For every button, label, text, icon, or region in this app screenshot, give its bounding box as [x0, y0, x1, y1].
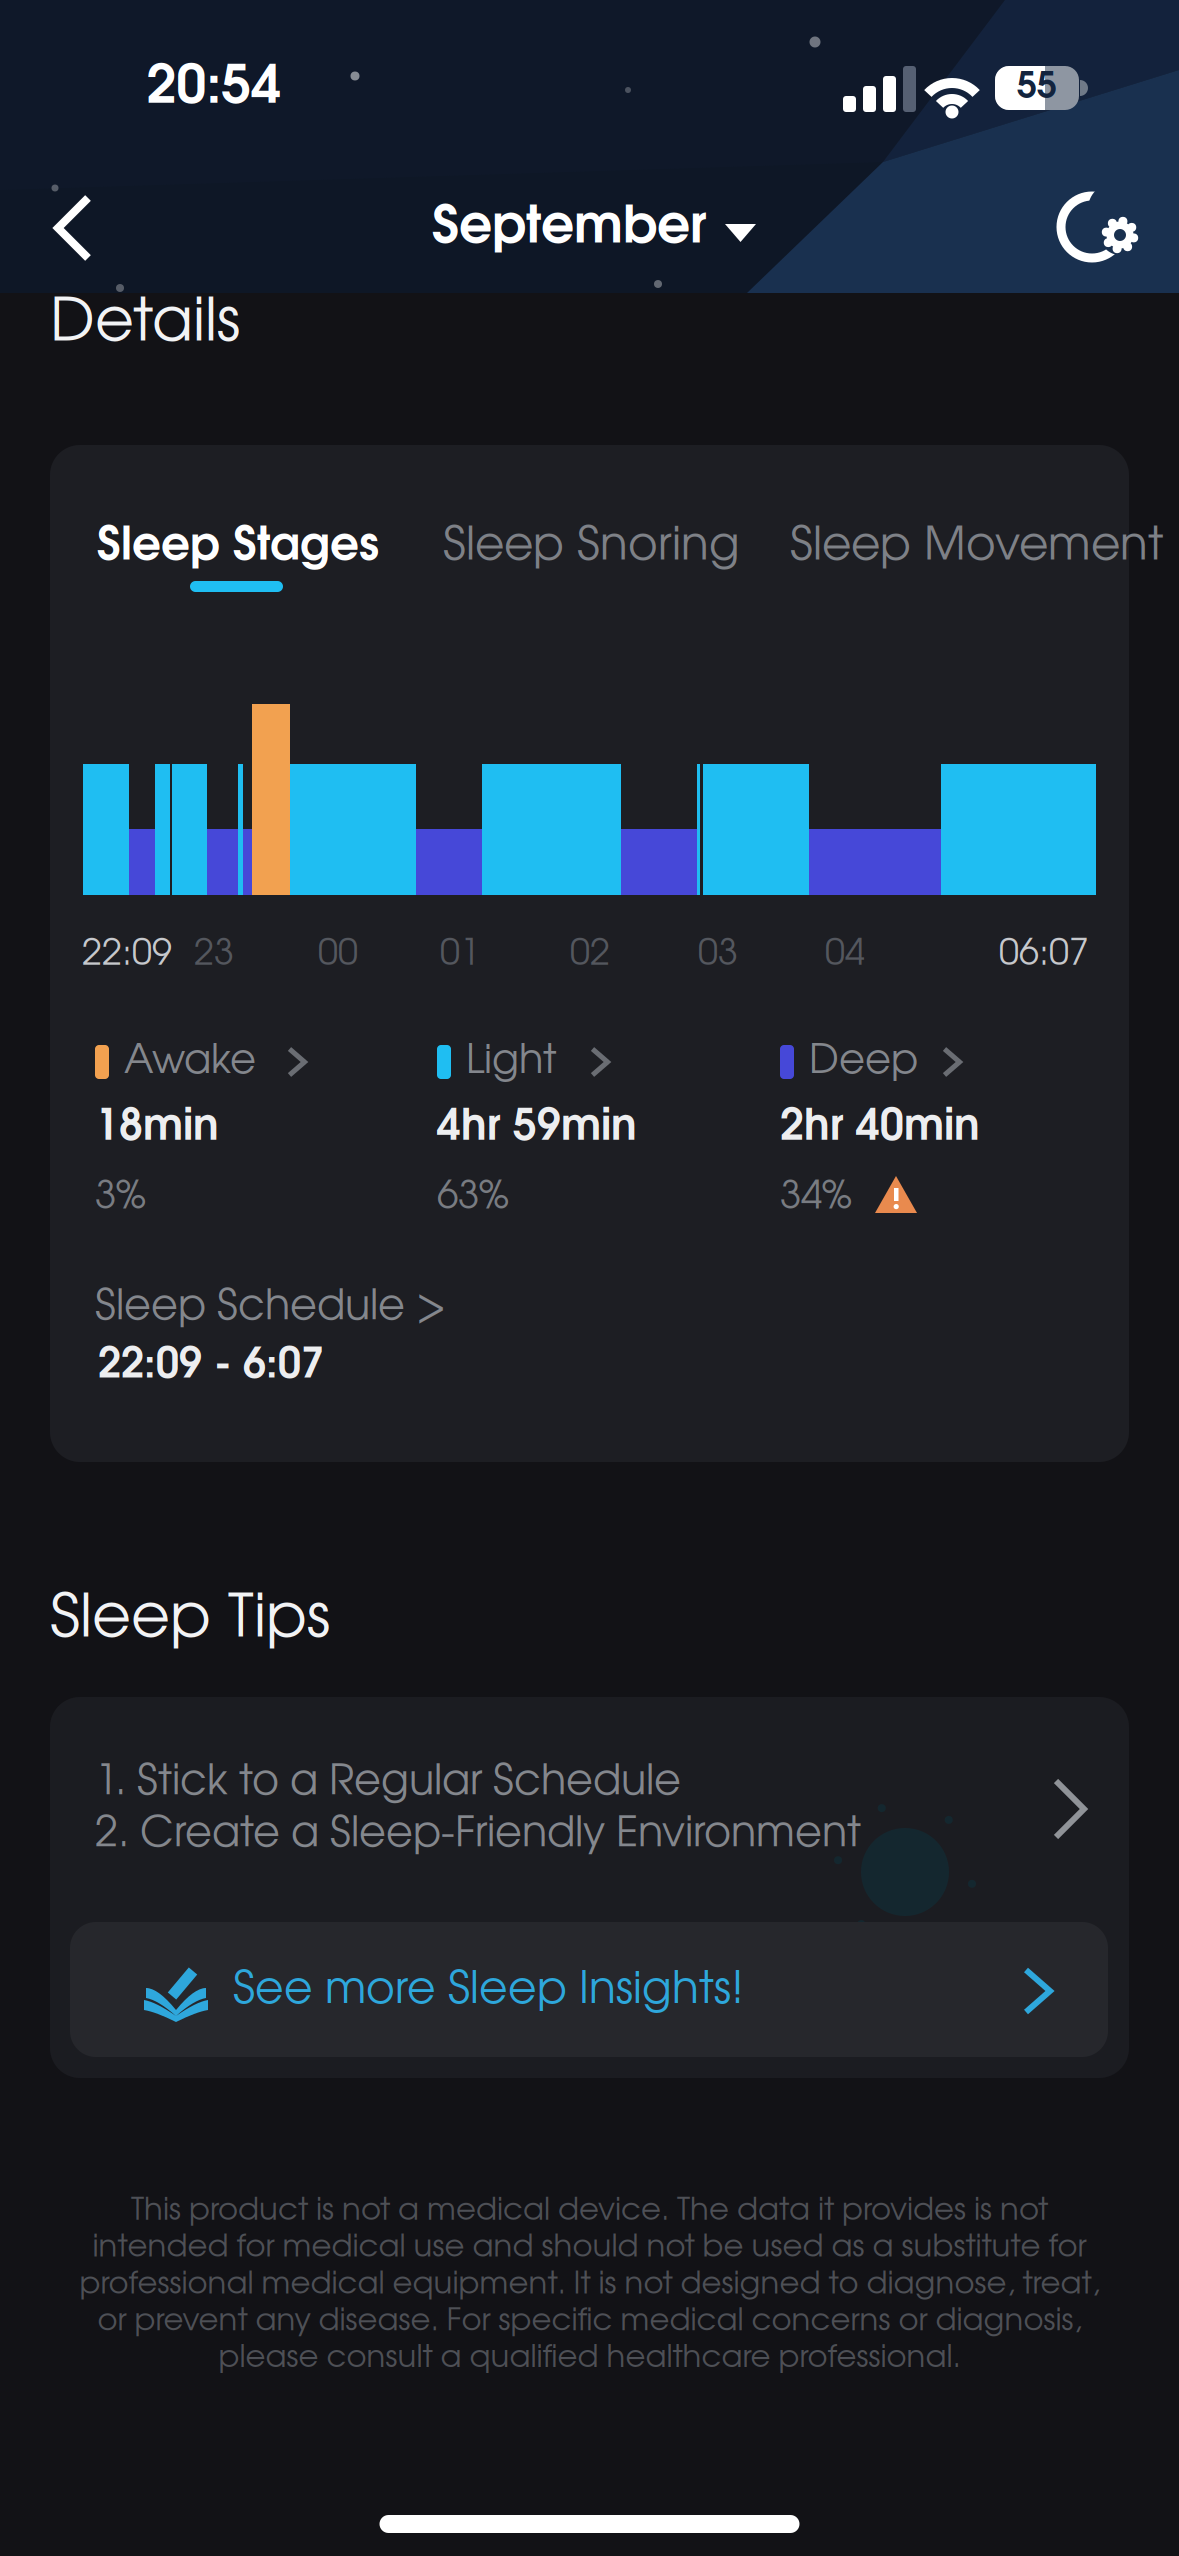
staticText: 63%	[437, 1180, 509, 1216]
staticText: 03	[698, 939, 738, 971]
staticText: Deep	[809, 1044, 918, 1080]
staticText: 3%	[95, 1180, 146, 1216]
staticText: This product is not a medical device. Th…	[131, 2197, 1048, 2225]
staticText: Sleep Tips	[50, 1593, 330, 1647]
staticText: or prevent any disease. For specific med…	[97, 2308, 1081, 2336]
staticText: See more Sleep Insights!	[233, 1971, 744, 2011]
staticText: 55	[1017, 72, 1057, 104]
staticText: 34%	[780, 1180, 852, 1216]
staticText: 06:07	[999, 939, 1089, 971]
staticText: Sleep Stages	[97, 527, 379, 567]
staticText: 2. Create a Sleep-Friendly Environment	[95, 1816, 861, 1854]
staticText: Sleep Schedule >	[95, 1289, 446, 1327]
staticText: 04	[825, 939, 865, 971]
staticText: 20:54	[146, 64, 281, 112]
staticText: Sleep Movement	[790, 526, 1163, 568]
staticText: Light	[466, 1044, 557, 1080]
staticText: please consult a qualified healthcare pr…	[218, 2345, 960, 2373]
staticText: 22:09	[82, 939, 172, 971]
staticText: Details	[50, 297, 240, 351]
staticText: 02	[570, 939, 610, 971]
staticText: 1. Stick to a Regular Schedule	[95, 1764, 681, 1802]
staticText: 22:09 - 6:07	[98, 1347, 324, 1385]
staticText: Awake	[124, 1044, 256, 1080]
staticText: 2hr 40min	[780, 1109, 980, 1147]
staticText: 00	[318, 939, 358, 971]
staticText: intended for medical use and should not …	[92, 2234, 1086, 2262]
staticText: 4hr 59min	[437, 1109, 637, 1147]
staticText: 01	[440, 939, 480, 971]
staticText: 23	[194, 939, 234, 971]
staticText: professional medical equipment. It is no…	[79, 2271, 1099, 2299]
staticText: 18min	[95, 1109, 219, 1147]
staticText: Sleep Snoring	[443, 526, 740, 568]
staticText: September	[432, 205, 707, 251]
